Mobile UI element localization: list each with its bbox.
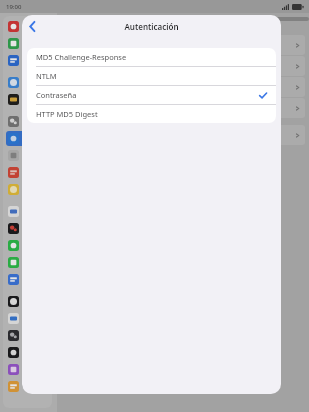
staticText: Autenticación: [124, 21, 179, 32]
button[interactable]: [6, 19, 47, 34]
button[interactable]: [6, 238, 47, 253]
staticText: Contraseña: [36, 90, 77, 100]
button[interactable]: [6, 255, 47, 270]
button[interactable]: Atrás: [22, 16, 42, 36]
button[interactable]: [257, 125, 305, 145]
button[interactable]: NTLM: [27, 67, 276, 86]
button[interactable]: [6, 114, 47, 129]
button[interactable]: HTTP MD5 Digest: [27, 105, 276, 123]
button[interactable]: [257, 98, 305, 118]
button[interactable]: [6, 221, 47, 236]
button[interactable]: [6, 53, 47, 68]
button[interactable]: MD5 Challenge-Response: [27, 48, 276, 67]
button[interactable]: Contraseña: [27, 86, 276, 105]
button[interactable]: [6, 92, 47, 107]
button[interactable]: [6, 182, 47, 197]
button[interactable]: [257, 35, 305, 55]
button[interactable]: [6, 148, 47, 163]
button[interactable]: [6, 362, 47, 377]
button[interactable]: [257, 56, 305, 76]
button[interactable]: [6, 328, 47, 343]
button[interactable]: [6, 204, 47, 219]
button[interactable]: [257, 77, 305, 97]
button[interactable]: [6, 311, 47, 326]
button[interactable]: [6, 131, 47, 146]
button[interactable]: [6, 36, 47, 51]
button[interactable]: [6, 272, 47, 287]
button[interactable]: [6, 294, 47, 309]
button[interactable]: [6, 75, 47, 90]
button[interactable]: [6, 379, 47, 394]
staticText: 19:00: [6, 3, 22, 11]
button[interactable]: [6, 345, 47, 360]
staticText: HTTP MD5 Digest: [36, 109, 98, 119]
staticText: NTLM: [36, 71, 57, 81]
staticText: MD5 Challenge-Response: [36, 52, 127, 62]
button[interactable]: [6, 165, 47, 180]
